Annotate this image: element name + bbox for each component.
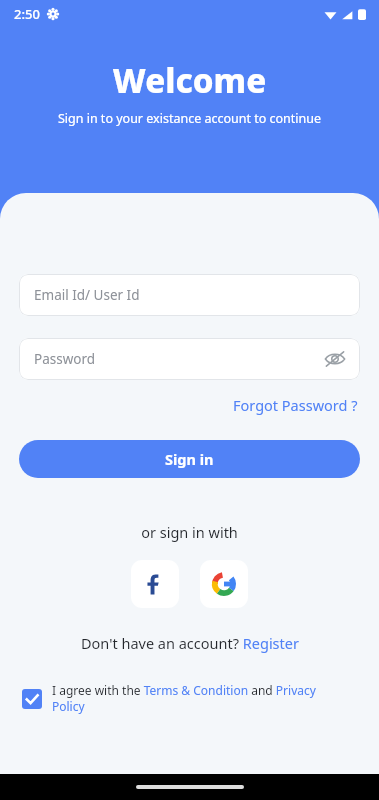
staticText: I agree with the Terms & Condition and P…	[52, 682, 349, 715]
button[interactable]: Password	[19, 338, 360, 380]
button[interactable]: Sign in	[19, 440, 360, 478]
button[interactable]: Agree to terms	[22, 689, 42, 709]
button[interactable]: Email Id/ User Id	[19, 274, 360, 316]
staticText: Sign in to your existance account to con…	[0, 110, 379, 127]
button[interactable]: Sign in with Google	[200, 560, 248, 608]
staticText: Password	[34, 350, 96, 368]
staticText: Sign in	[165, 449, 214, 469]
staticText: Don't have an account? Register	[81, 633, 299, 653]
staticText: Welcome	[0, 58, 379, 103]
staticText: or sign in with	[0, 522, 379, 542]
button[interactable]: Show password	[323, 347, 347, 371]
button[interactable]: Don't have an account? Register	[0, 633, 379, 653]
staticText: Forgot Password ?	[233, 395, 358, 415]
staticText: 2:50	[14, 5, 40, 23]
button[interactable]: Forgot Password ?	[231, 393, 360, 417]
staticText: Email Id/ User Id	[34, 286, 140, 304]
button[interactable]: Sign in with Facebook	[131, 560, 179, 608]
